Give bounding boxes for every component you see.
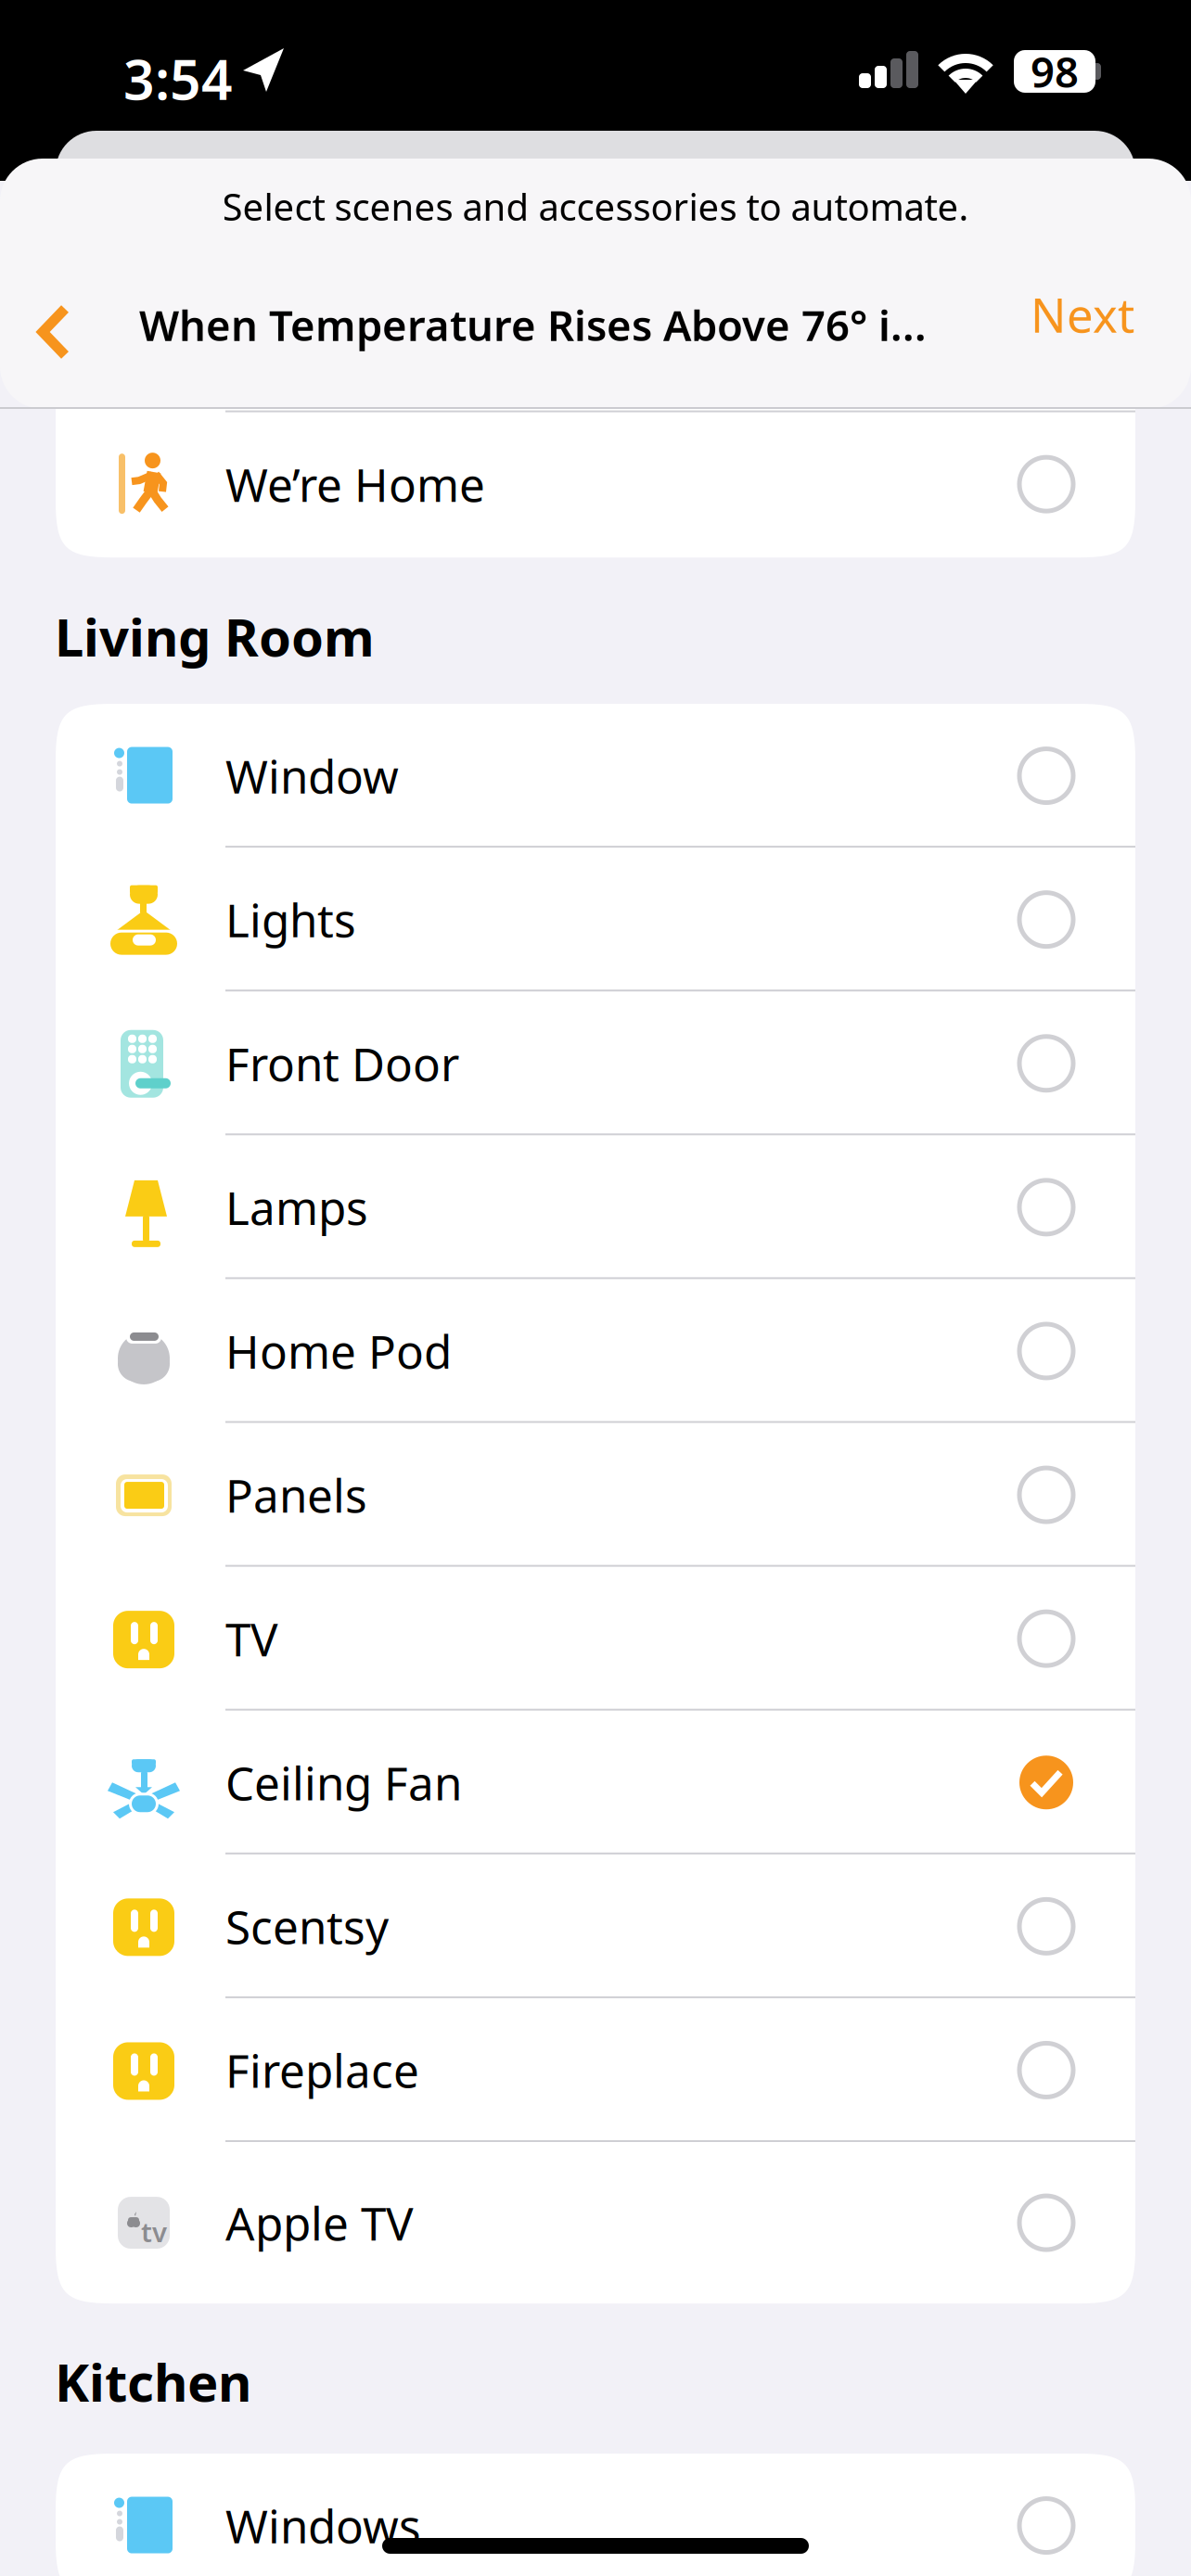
button[interactable]: Ceiling Fan	[56, 1711, 1135, 1854]
button[interactable]: Lights	[56, 848, 1135, 991]
button[interactable]: TV	[56, 1567, 1135, 1711]
staticText: 98	[1031, 43, 1079, 99]
button[interactable]: Front Door	[56, 991, 1135, 1135]
staticText: Windows	[225, 2495, 421, 2556]
staticText: TV	[225, 1608, 278, 1669]
staticText: When Temperature Rises Above 76° i...	[139, 297, 927, 353]
staticText: 3:54	[123, 43, 233, 115]
staticText: Ceiling Fan	[225, 1752, 462, 1813]
button[interactable]: Windows	[56, 2454, 1135, 2576]
button[interactable]	[56, 268, 1135, 412]
staticText: Home Pod	[225, 1321, 452, 1381]
staticText: Select scenes and accessories to automat…	[222, 182, 969, 231]
staticText: Living Room	[55, 602, 375, 671]
staticText: Apple TV	[225, 2192, 414, 2253]
button[interactable]: We’re Home	[56, 412, 1135, 556]
staticText: Lamps	[225, 1177, 368, 1238]
staticText: Panels	[225, 1464, 367, 1525]
button[interactable]: Fireplace	[56, 1998, 1135, 2142]
staticText: Next	[1031, 283, 1134, 346]
staticText: Lights	[225, 889, 356, 950]
staticText: Scentsy	[225, 1896, 389, 1957]
staticText: Front Door	[225, 1033, 459, 1094]
button[interactable]: Back	[37, 289, 126, 382]
button[interactable]: Window	[56, 704, 1135, 848]
button[interactable]: Lamps	[56, 1135, 1135, 1279]
staticText: tv	[141, 2214, 167, 2250]
button[interactable]: tv	[56, 2142, 1135, 2303]
staticText: Window	[225, 745, 399, 806]
staticText: Kitchen	[55, 2347, 251, 2416]
staticText: We’re Home	[225, 454, 485, 515]
button[interactable]: Home Pod	[56, 1279, 1135, 1423]
staticText: Fireplace	[225, 2040, 419, 2100]
button[interactable]: Scentsy	[56, 1854, 1135, 1998]
button[interactable]: Next	[986, 270, 1134, 359]
button[interactable]: Panels	[56, 1423, 1135, 1567]
